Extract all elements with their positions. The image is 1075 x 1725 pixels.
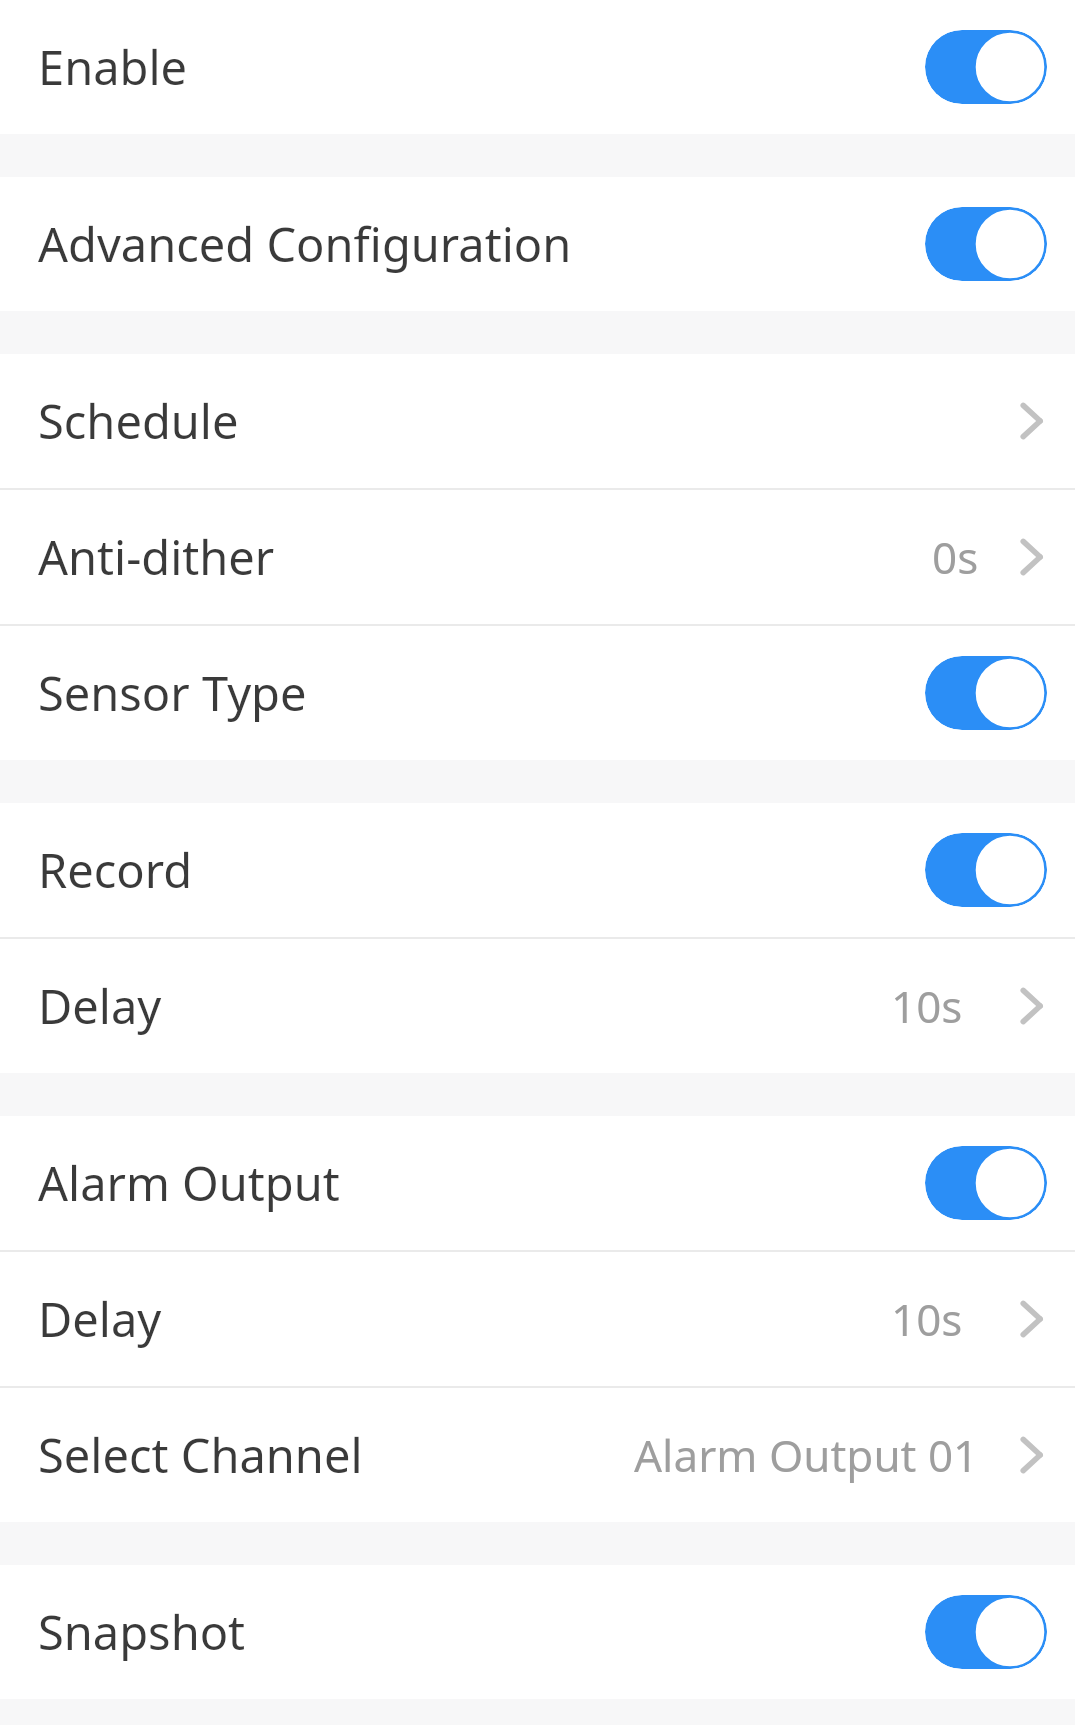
staticText: Record — [38, 838, 925, 902]
button[interactable]: Record toggle — [925, 833, 1047, 907]
staticText: Snapshot — [38, 1600, 925, 1664]
button[interactable]: Delay — [0, 1252, 1075, 1386]
staticText: Delay — [38, 1287, 162, 1351]
button[interactable]: Anti-dither — [0, 490, 1075, 624]
button[interactable]: Schedule — [0, 354, 1075, 488]
button[interactable]: Record — [0, 803, 1075, 937]
button[interactable]: Enable — [0, 0, 1075, 134]
staticText: 10s — [891, 1289, 963, 1349]
staticText: Enable — [38, 35, 925, 99]
staticText: Select Channel — [38, 1423, 363, 1487]
button[interactable]: Delay — [0, 939, 1075, 1073]
button[interactable]: Sensor Type — [0, 626, 1075, 760]
staticText: Alarm Output 01 — [634, 1425, 979, 1485]
button[interactable]: Advanced Configuration toggle — [925, 207, 1047, 281]
button[interactable]: Select Channel — [0, 1388, 1075, 1522]
button[interactable]: Snapshot toggle — [925, 1595, 1047, 1669]
button[interactable]: Enable toggle — [925, 30, 1047, 104]
staticText: Delay — [38, 974, 162, 1038]
staticText: Advanced Configuration — [38, 212, 925, 276]
staticText: Sensor Type — [38, 661, 925, 725]
staticText: Anti-dither — [38, 525, 275, 589]
button[interactable]: Sensor Type toggle — [925, 656, 1047, 730]
staticText: 10s — [891, 976, 963, 1036]
staticText: Schedule — [38, 389, 239, 453]
button[interactable]: Alarm Output — [0, 1116, 1075, 1250]
staticText: 0s — [932, 527, 979, 587]
button[interactable]: Advanced Configuration — [0, 177, 1075, 311]
staticText: Alarm Output — [38, 1151, 925, 1215]
button[interactable]: Alarm Output toggle — [925, 1146, 1047, 1220]
button[interactable]: Snapshot — [0, 1565, 1075, 1699]
